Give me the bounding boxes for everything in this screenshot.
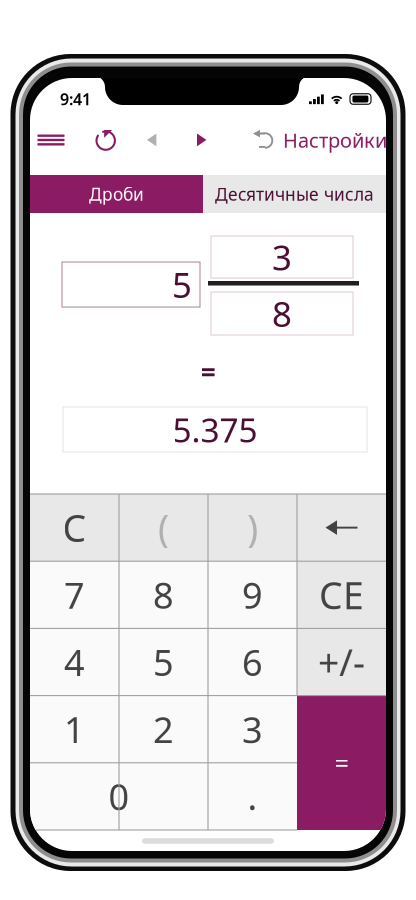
button[interactable]: . bbox=[208, 763, 297, 830]
staticText: 3 bbox=[242, 705, 263, 753]
staticText: ) bbox=[247, 503, 258, 552]
button[interactable]: 9 bbox=[208, 561, 297, 628]
button[interactable]: +/- bbox=[297, 628, 386, 696]
button[interactable]: 4 bbox=[30, 628, 119, 696]
staticText: Настройки bbox=[283, 127, 387, 153]
staticText: 9 bbox=[242, 571, 263, 619]
staticText: 3 bbox=[272, 234, 292, 280]
staticText: 9:41 bbox=[60, 88, 91, 110]
button[interactable]: Next bbox=[180, 120, 224, 160]
button[interactable]: Backspace bbox=[297, 494, 386, 561]
staticText: 5 bbox=[153, 638, 174, 686]
button[interactable]: 5 bbox=[119, 628, 208, 696]
staticText: = bbox=[200, 354, 215, 390]
staticText: C bbox=[62, 503, 86, 552]
button[interactable]: Undo bbox=[243, 120, 283, 160]
staticText: . bbox=[247, 772, 257, 820]
button[interactable]: 8 bbox=[119, 561, 208, 628]
staticText: 6 bbox=[242, 638, 263, 686]
button[interactable]: 2 bbox=[119, 696, 208, 763]
staticText: 5 bbox=[172, 261, 192, 307]
staticText: 7 bbox=[64, 571, 85, 619]
button[interactable]: C bbox=[30, 494, 119, 561]
button[interactable]: Reset bbox=[84, 120, 128, 160]
staticText: 0 bbox=[108, 772, 129, 820]
staticText: 1 bbox=[64, 705, 85, 753]
button[interactable]: 1 bbox=[30, 696, 119, 763]
staticText: Дроби bbox=[89, 182, 144, 205]
staticText: Десятичные числа bbox=[215, 182, 374, 205]
button[interactable]: = bbox=[297, 696, 386, 830]
button[interactable]: 3 bbox=[208, 696, 297, 763]
staticText: = bbox=[334, 746, 348, 780]
button[interactable]: 6 bbox=[208, 628, 297, 696]
button[interactable]: Дроби bbox=[30, 175, 203, 213]
staticText: 2 bbox=[153, 705, 174, 753]
button[interactable]: 0 bbox=[30, 763, 208, 830]
button[interactable]: Десятичные числа bbox=[203, 175, 386, 213]
staticText: 8 bbox=[153, 571, 174, 619]
staticText: 5.375 bbox=[172, 407, 257, 452]
staticText: ( bbox=[158, 503, 169, 552]
button[interactable]: Настройки bbox=[283, 120, 387, 160]
button[interactable]: 7 bbox=[30, 561, 119, 628]
button[interactable]: ) bbox=[208, 494, 297, 561]
staticText: 8 bbox=[272, 290, 292, 336]
button[interactable]: Previous bbox=[130, 120, 174, 160]
button[interactable]: Menu bbox=[29, 120, 73, 160]
button[interactable]: CE bbox=[297, 561, 386, 628]
staticText: 4 bbox=[64, 638, 85, 686]
button[interactable]: ( bbox=[119, 494, 208, 561]
staticText: CE bbox=[319, 570, 364, 620]
staticText: +/- bbox=[318, 637, 365, 687]
